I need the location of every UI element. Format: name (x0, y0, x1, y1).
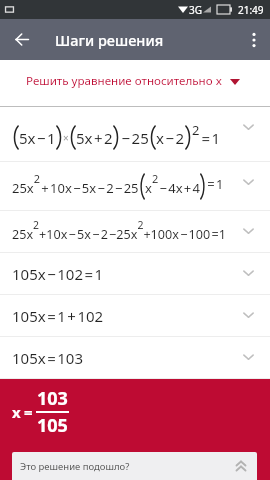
staticText: 105x − 102 = 1 (12, 264, 104, 284)
button[interactable]: 105x = 1 + 102 (0, 295, 270, 337)
staticText: x2 − 4x + 4 (145, 171, 200, 197)
staticText: 21:49 (238, 3, 264, 17)
button[interactable]: Решить уравнение относительно x (0, 60, 270, 106)
staticText: 25x2+10x − 5x − 2 −25x2+100x − 100 =1 (12, 218, 226, 242)
staticText: 3G (189, 3, 202, 17)
staticText: = 1 (200, 128, 221, 148)
button[interactable]: 25x2+10x − 5x − 2 −25x2+100x − 100 =1 (0, 211, 270, 253)
button[interactable]: 105x − 102 = 1 (0, 253, 270, 295)
button[interactable]: 105x = 103 (0, 337, 270, 379)
staticText: 25x2 + 10x − 5x − 2 − 25 (12, 171, 139, 197)
staticText: 105x = 103 (12, 348, 83, 368)
staticText: x − 2 (156, 128, 185, 148)
staticText: Это решение подошло? (20, 460, 130, 473)
button[interactable]: 5x − 1 (0, 107, 270, 162)
staticText: = (24, 402, 33, 422)
button[interactable]: Это решение подошло? (12, 452, 257, 480)
button[interactable]: More options (237, 19, 270, 60)
button[interactable]: Back (0, 19, 44, 60)
staticText: × (63, 131, 69, 145)
staticText: 103 (37, 386, 68, 411)
staticText: 5x + 2 (76, 128, 113, 148)
button[interactable]: 25x2 + 10x − 5x − 2 − 25 (0, 162, 270, 211)
other: Expand (236, 461, 246, 471)
staticText: Шаги решения (55, 30, 164, 50)
staticText: − 25 (120, 128, 149, 148)
staticText: 2 (192, 121, 200, 139)
staticText: 5x − 1 (19, 128, 56, 148)
staticText: Решить уравнение относительно x (26, 73, 222, 89)
staticText: 105 (37, 413, 68, 438)
staticText: = 1 (206, 175, 224, 193)
staticText: 105x = 1 + 102 (12, 306, 104, 326)
staticText: x (12, 402, 21, 422)
